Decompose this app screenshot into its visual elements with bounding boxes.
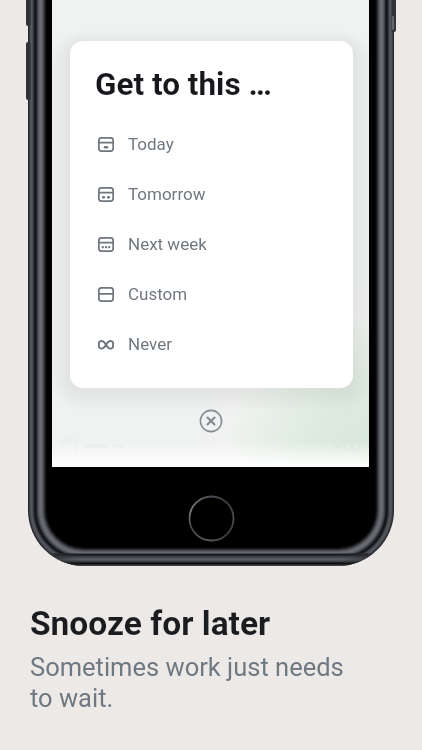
button[interactable]: Next week — [70, 219, 353, 269]
button[interactable]: Today — [70, 119, 353, 169]
staticText: Tomorrow — [128, 184, 206, 204]
staticText: Custom — [128, 284, 188, 304]
staticText: Never — [128, 334, 172, 354]
button[interactable]: Custom — [70, 269, 353, 319]
staticText: Sometimes work just needs to wait. — [30, 652, 355, 713]
button[interactable]: Never — [70, 319, 353, 369]
staticText: Next week — [128, 234, 207, 254]
staticText: Get to this … — [95, 66, 272, 103]
staticText: Today — [128, 134, 174, 154]
button[interactable]: Tomorrow — [70, 169, 353, 219]
button[interactable]: Close — [193, 403, 229, 439]
staticText: Snooze for later — [30, 604, 271, 643]
